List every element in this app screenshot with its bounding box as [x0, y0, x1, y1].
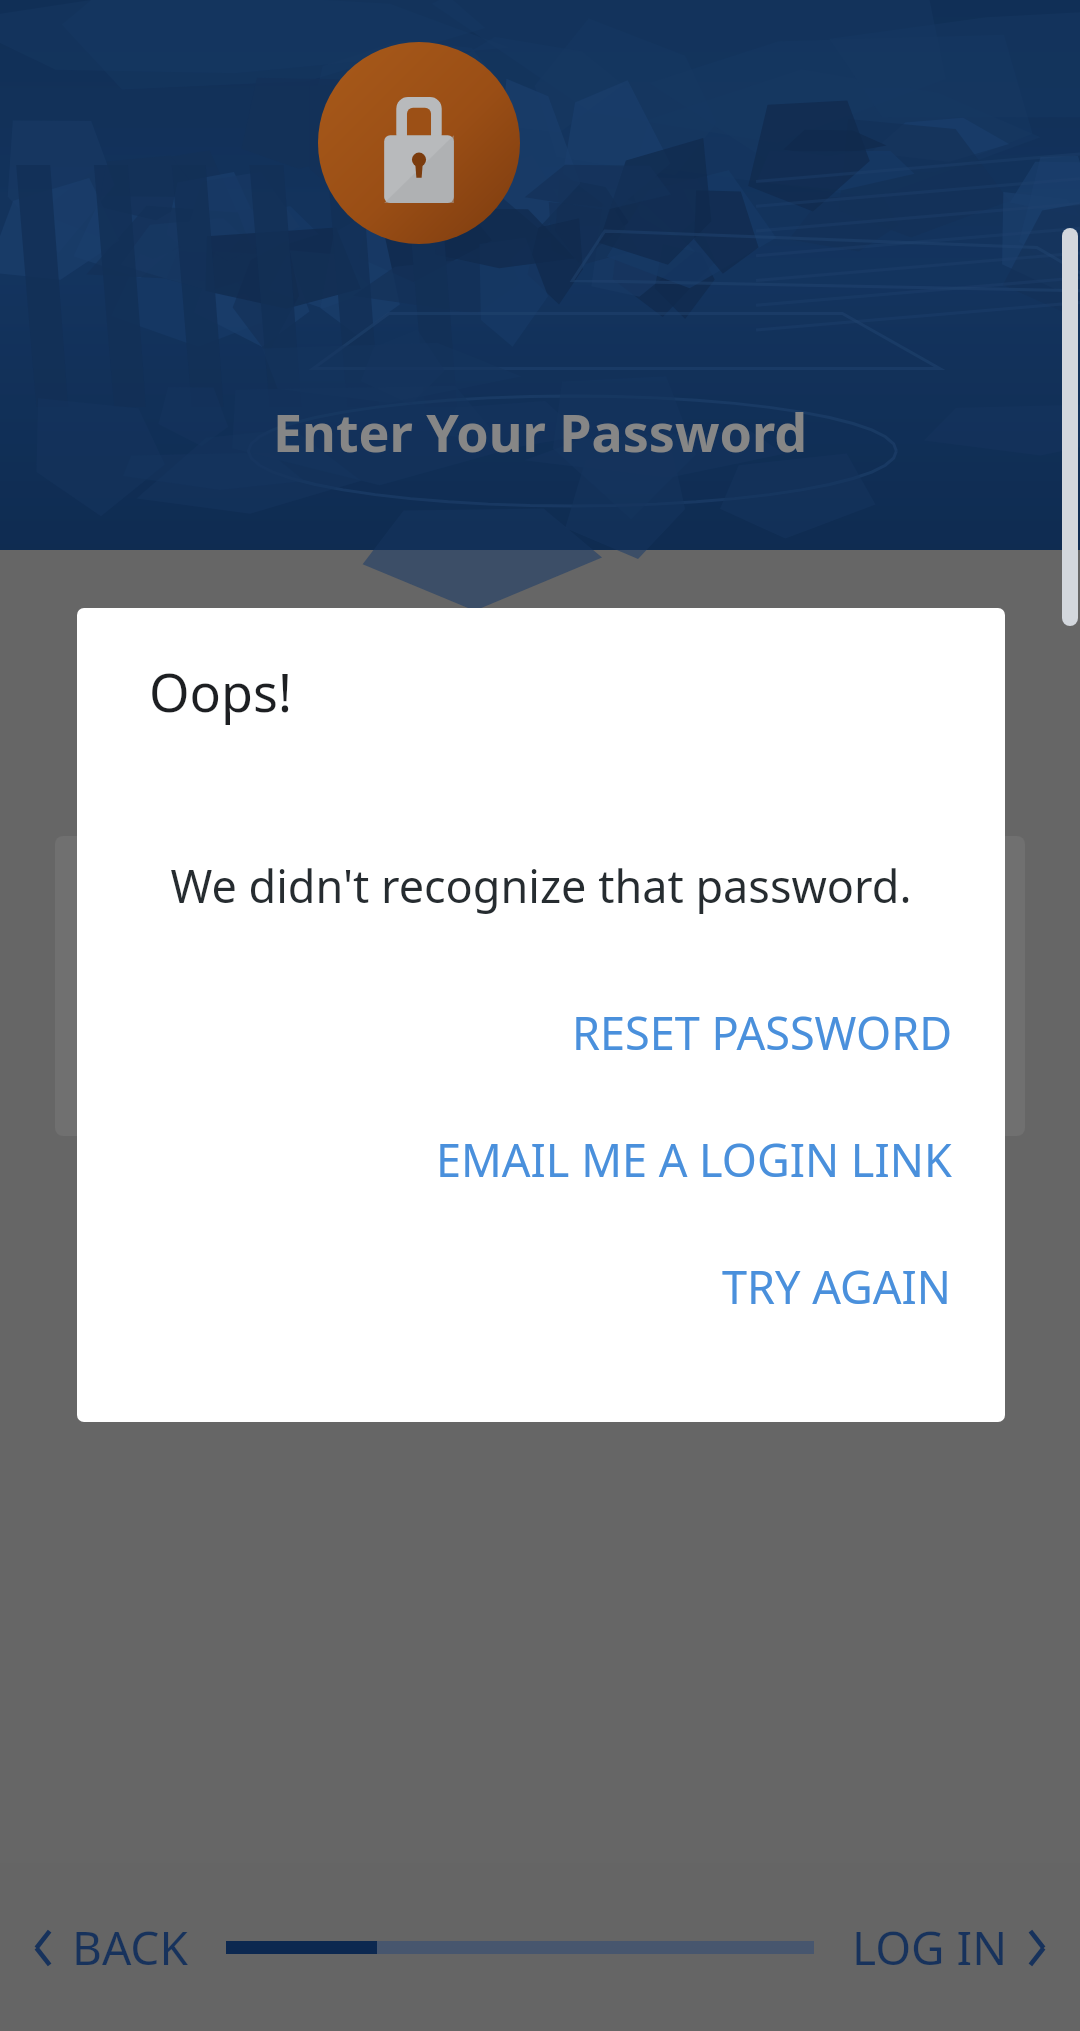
staticText: RESET PASSWORD	[572, 1002, 952, 1063]
button[interactable]: Back	[16, 1896, 204, 1999]
other: Log in	[1026, 1927, 1048, 1969]
button[interactable]: RESET PASSWORD	[77, 994, 1005, 1071]
staticText: Enter Your Password	[0, 396, 1080, 467]
other: Back	[32, 1927, 54, 1969]
staticText: Oops!	[149, 656, 292, 727]
staticText: BACK	[72, 1916, 188, 1979]
button[interactable]: EMAIL ME A LOGIN LINK	[77, 1121, 1005, 1198]
staticText: We didn't recognize that password.	[107, 855, 975, 916]
staticText: TRY AGAIN	[722, 1256, 952, 1317]
button[interactable]: TRY AGAIN	[77, 1248, 1005, 1325]
button[interactable]: LOG IN	[836, 1896, 1064, 1999]
staticText: LOG IN	[852, 1916, 1008, 1979]
staticText: EMAIL ME A LOGIN LINK	[436, 1129, 952, 1190]
